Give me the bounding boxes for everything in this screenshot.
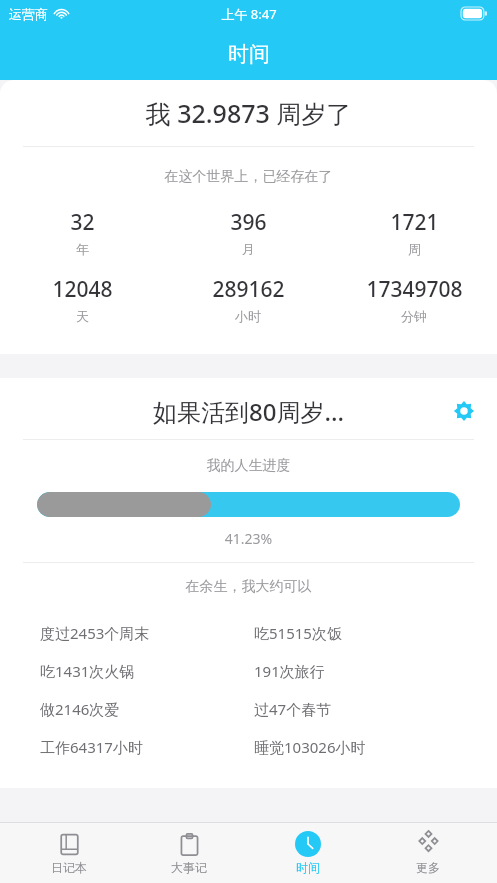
staticText: 17349708	[366, 275, 463, 304]
button[interactable]: 设置	[447, 394, 481, 428]
staticText: 年	[76, 241, 89, 257]
staticText: 度过2453个周末	[40, 623, 150, 643]
staticText: 分钟	[401, 308, 427, 324]
staticText: 天	[76, 308, 89, 324]
button[interactable]: 更多	[378, 822, 478, 883]
staticText: 吃1431次火锅	[40, 661, 135, 681]
staticText: 如果活到80周岁...	[0, 395, 497, 428]
staticText: 运营商	[9, 6, 48, 22]
staticText: 小时	[235, 308, 261, 324]
staticText: 做2146次爱	[40, 699, 120, 719]
staticText: 我 32.9873 周岁了	[0, 96, 497, 130]
staticText: 睡觉103026小时	[254, 737, 366, 757]
staticText: 12048	[52, 275, 113, 304]
staticText: 周	[408, 241, 421, 257]
staticText: 396	[230, 208, 267, 237]
staticText: 月	[242, 241, 255, 257]
staticText: 过47个春节	[254, 699, 332, 719]
staticText: 32	[70, 208, 95, 237]
button[interactable]: 大事记	[139, 822, 239, 883]
staticText: 我的人生进度	[0, 457, 497, 475]
staticText: 时间	[296, 860, 320, 875]
button[interactable]: 日记本	[19, 822, 119, 883]
button[interactable]: 时间	[258, 822, 358, 883]
staticText: 1721	[390, 208, 439, 237]
staticText: 191次旅行	[254, 661, 325, 681]
staticText: 更多	[416, 860, 440, 875]
staticText: 289162	[212, 275, 285, 304]
staticText: 41.23%	[0, 529, 497, 548]
staticText: 在这个世界上，已经存在了	[0, 168, 497, 186]
staticText: 吃51515次饭	[254, 623, 342, 643]
staticText: 大事记	[171, 860, 207, 875]
staticText: 上午 8:47	[221, 5, 277, 23]
staticText: 在余生，我大约可以	[0, 578, 497, 596]
staticText: 工作64317小时	[40, 737, 143, 757]
staticText: 日记本	[51, 860, 87, 875]
staticText: 时间	[228, 41, 270, 67]
